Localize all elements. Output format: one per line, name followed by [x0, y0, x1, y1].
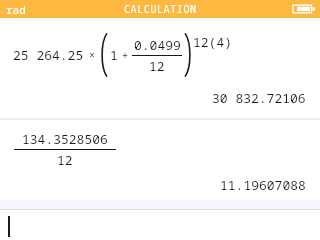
staticText: 12 [57, 151, 73, 169]
button[interactable]: 11.19607088 [0, 172, 320, 198]
staticText: 25 264.25 [13, 46, 84, 64]
staticText: CALCULATION [124, 2, 197, 16]
staticText: 30 832.72106 [212, 89, 306, 107]
staticText: 12 [149, 57, 165, 75]
staticText: 1 [110, 46, 118, 64]
staticText: + [122, 48, 128, 62]
staticText: × [89, 48, 95, 62]
button[interactable]: Expression input [0, 210, 320, 240]
button[interactable]: 25 264.25 [0, 18, 320, 86]
button[interactable]: rad [6, 2, 26, 17]
button[interactable]: 30 832.72106 [0, 86, 320, 110]
staticText: 0.0499 [134, 36, 181, 54]
staticText: 12(4) [193, 33, 233, 51]
staticText: 134.3528506 [22, 130, 108, 148]
button[interactable]: 134.3528506 [0, 126, 320, 172]
staticText: 11.19607088 [220, 176, 306, 194]
button[interactable]: Battery [293, 3, 315, 15]
